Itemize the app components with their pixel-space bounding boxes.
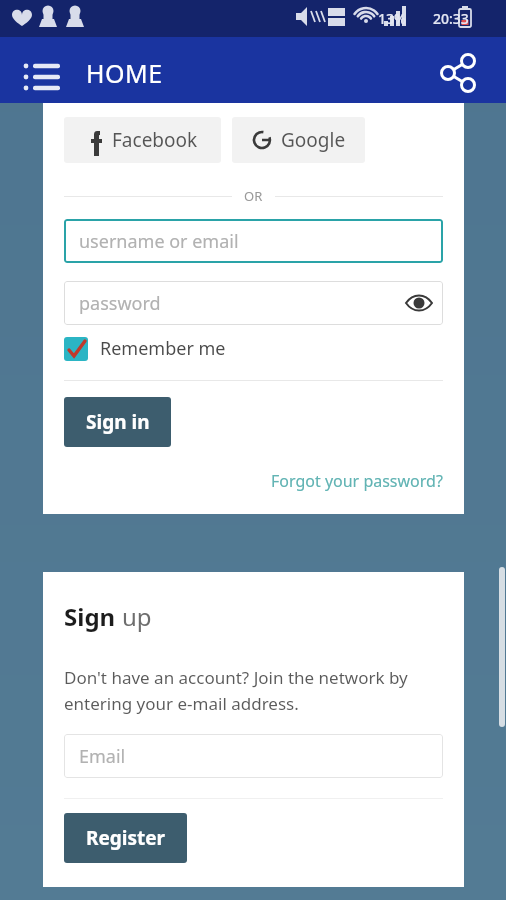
staticText: Facebook xyxy=(112,127,198,153)
button[interactable]: Menu xyxy=(14,50,58,94)
button[interactable]: password xyxy=(64,281,443,325)
staticText: Don't have an account? Join the network … xyxy=(64,666,443,715)
button[interactable]: Google xyxy=(232,117,365,163)
staticText: password xyxy=(79,291,161,316)
staticText: OR xyxy=(244,187,263,205)
staticText: HOME xyxy=(86,56,163,90)
button[interactable]: username or email xyxy=(64,219,443,263)
button[interactable]: Forgot your password? xyxy=(271,470,443,492)
button[interactable]: Show password xyxy=(403,287,435,319)
staticText: Remember me xyxy=(100,336,226,361)
staticText: Sign in xyxy=(86,409,150,435)
staticText: Email xyxy=(79,744,126,769)
staticText: username or email xyxy=(79,229,239,254)
button[interactable]: Email xyxy=(64,734,443,778)
button[interactable]: Register xyxy=(64,813,187,863)
staticText: Google xyxy=(281,127,346,153)
button[interactable]: Facebook xyxy=(64,117,221,163)
staticText: Register xyxy=(86,825,166,851)
staticText: 13% xyxy=(378,9,406,28)
button[interactable]: Remember me xyxy=(64,336,226,361)
staticText: 20:33 xyxy=(433,9,469,28)
button[interactable]: Sign in xyxy=(64,397,171,447)
button[interactable]: Share xyxy=(435,51,479,95)
staticText: up xyxy=(122,600,152,633)
staticText: Sign xyxy=(64,600,122,633)
